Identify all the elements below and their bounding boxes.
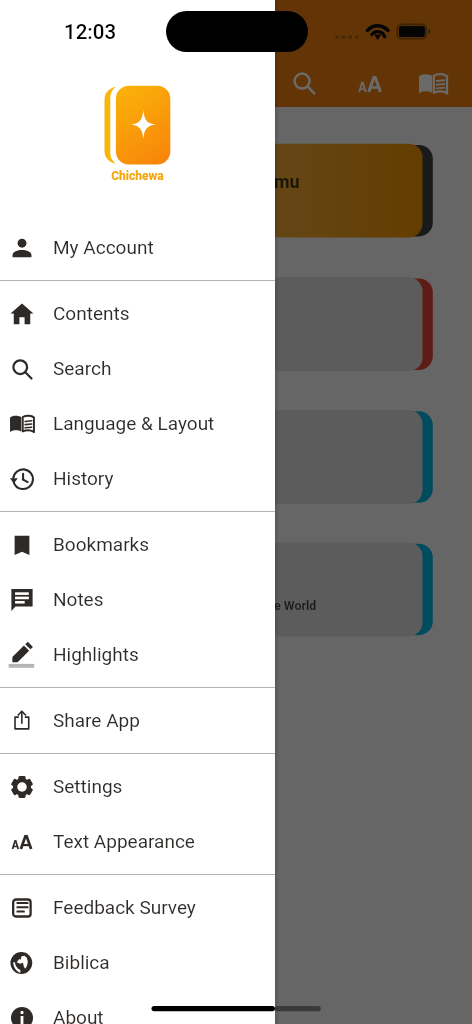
staticText: Settings bbox=[53, 775, 123, 797]
button[interactable]: About bbox=[0, 990, 275, 1024]
button[interactable]: Notes bbox=[0, 572, 275, 627]
staticText: 12:03 bbox=[64, 20, 117, 44]
button[interactable]: Share App bbox=[0, 693, 275, 748]
button[interactable]: My Account bbox=[0, 220, 275, 275]
staticText: History bbox=[53, 467, 114, 489]
button[interactable]: Reading view bbox=[411, 62, 455, 106]
staticText: Contents bbox=[53, 302, 130, 324]
staticText: Bookmarks bbox=[53, 533, 150, 555]
staticText: About bbox=[53, 1006, 104, 1024]
staticText: Text Appearance bbox=[53, 830, 195, 852]
staticText: Highlights bbox=[53, 643, 139, 665]
button[interactable]: Text Appearance bbox=[0, 814, 275, 869]
button[interactable]: Language & Layout bbox=[0, 396, 275, 451]
staticText: Feedback Survey bbox=[53, 896, 196, 918]
staticText: Share App bbox=[53, 709, 140, 731]
staticText: Chichewa bbox=[0, 169, 275, 183]
button[interactable]: Highlights bbox=[0, 627, 275, 682]
button[interactable]: Search bbox=[0, 341, 275, 396]
button[interactable]: Settings bbox=[0, 759, 275, 814]
button[interactable]: Bookmarks bbox=[0, 517, 275, 572]
button[interactable]: Feedback Survey bbox=[0, 880, 275, 935]
staticText: Notes bbox=[53, 588, 104, 610]
button[interactable]: History bbox=[0, 451, 275, 506]
button[interactable]: Contents bbox=[0, 286, 275, 341]
button[interactable]: Biblica bbox=[0, 935, 275, 990]
button[interactable]: Text size bbox=[348, 62, 392, 106]
staticText: mu bbox=[274, 171, 300, 192]
button[interactable]: Search bbox=[282, 61, 326, 105]
staticText: Biblica bbox=[53, 951, 110, 973]
staticText: My Account bbox=[53, 236, 154, 258]
staticText: e World bbox=[274, 598, 317, 613]
staticText: Language & Layout bbox=[53, 412, 215, 434]
staticText: Search bbox=[53, 357, 112, 379]
